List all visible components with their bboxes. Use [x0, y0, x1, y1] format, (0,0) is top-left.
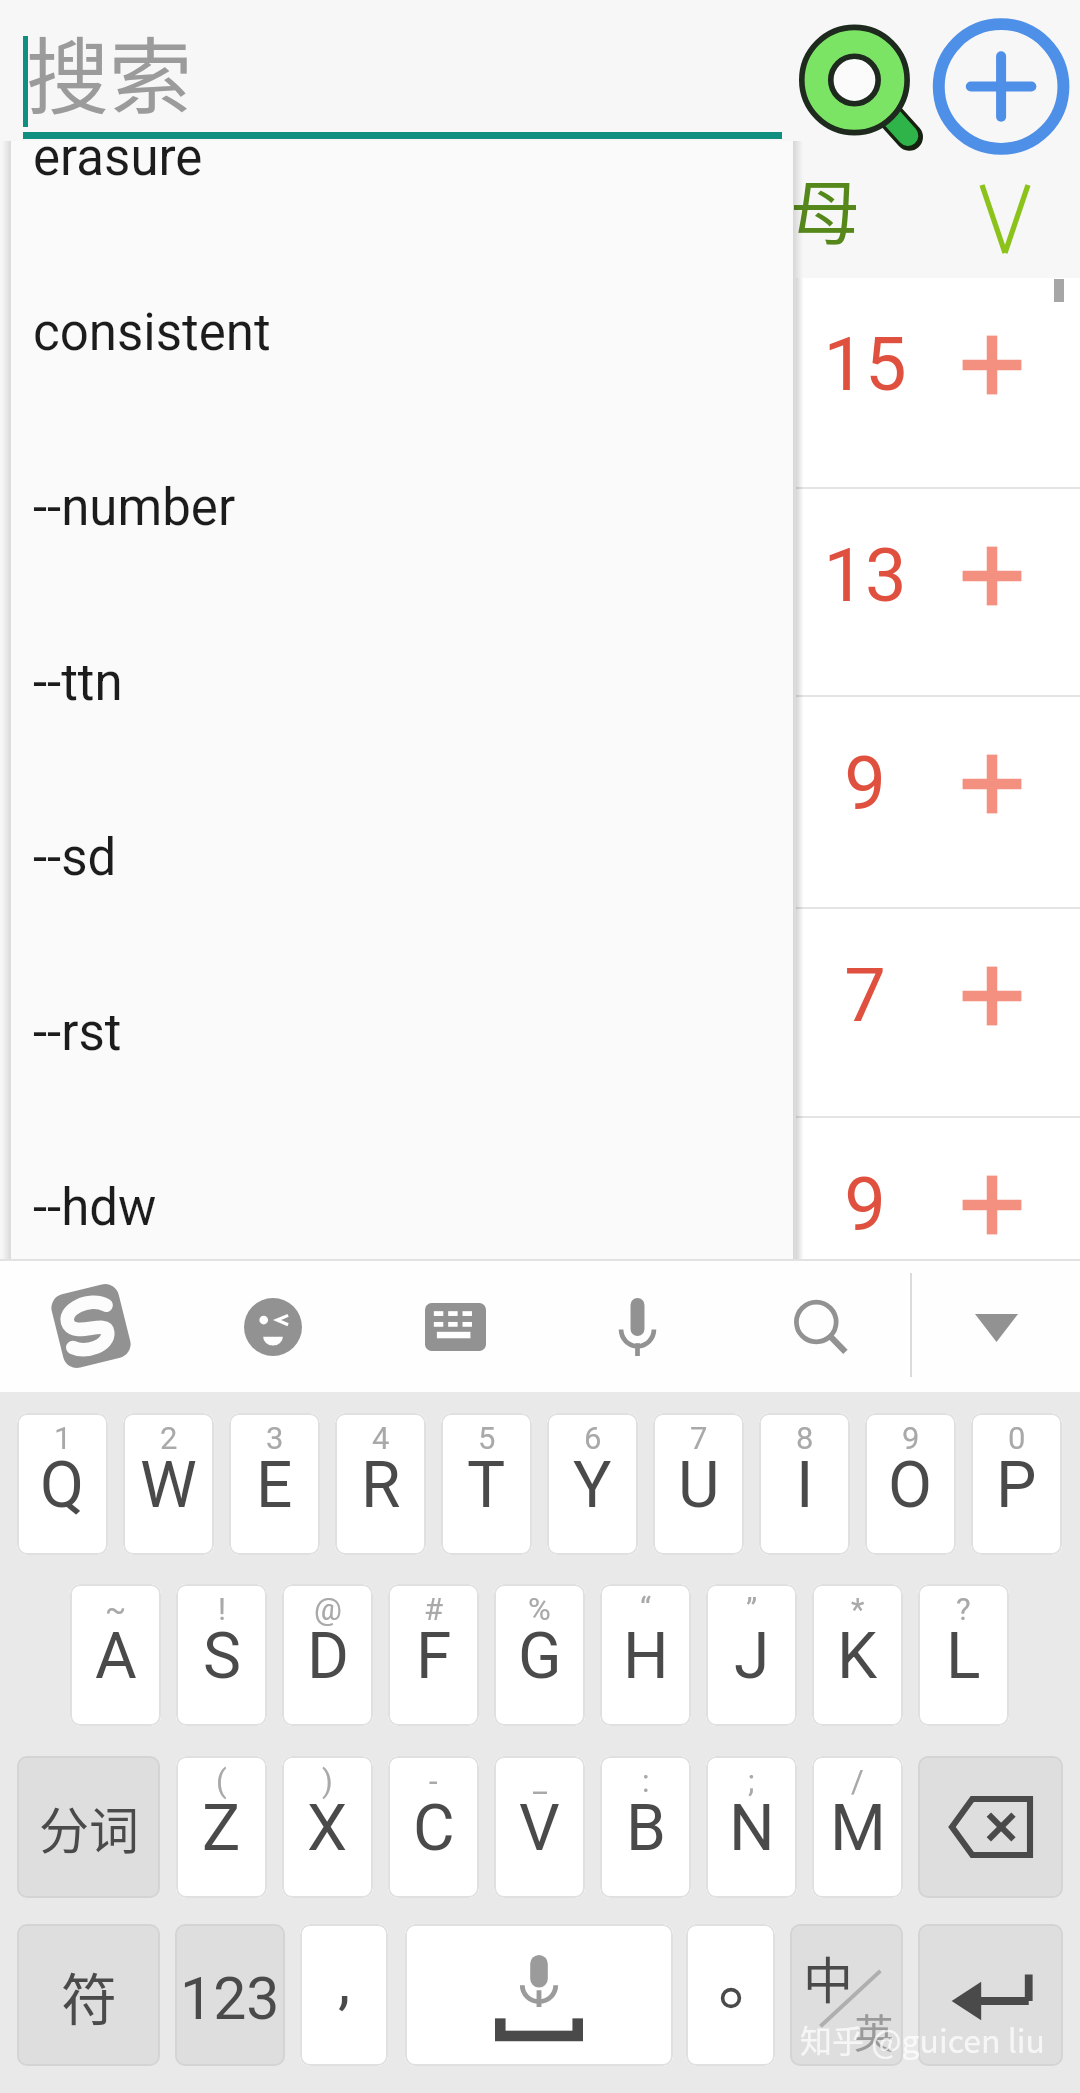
button[interactable]: ; [706, 1756, 797, 1898]
staticText: L [946, 1619, 981, 1694]
button[interactable]: , [300, 1924, 388, 2066]
button[interactable]: --number [11, 491, 793, 666]
staticText: Z [202, 1791, 241, 1866]
button[interactable]: @ [282, 1584, 373, 1726]
button[interactable]: % [494, 1584, 585, 1726]
staticText: Y [573, 1448, 612, 1523]
button[interactable]: 7 [653, 1413, 744, 1555]
button[interactable]: 2 [123, 1413, 214, 1555]
button[interactable]: _ [494, 1756, 585, 1898]
button[interactable]: Keyboard layout [400, 1272, 510, 1382]
staticText: S [203, 1619, 241, 1694]
button[interactable]: Space [405, 1924, 673, 2066]
button[interactable]: “ [600, 1584, 691, 1726]
staticText: E [256, 1448, 293, 1523]
button[interactable]: erasure [11, 141, 793, 316]
staticText: J [734, 1619, 770, 1694]
staticText: --ttn [33, 653, 123, 713]
staticText: --rst [33, 1003, 122, 1063]
staticText: A [95, 1619, 137, 1694]
staticText: erasure [33, 128, 203, 188]
staticText: 中 [803, 1941, 853, 2013]
staticText: 6 [584, 1420, 602, 1456]
staticText: --hdw [33, 1178, 157, 1238]
button[interactable]: * [812, 1584, 903, 1726]
staticText: _ [533, 1763, 547, 1799]
staticText: 123 [180, 1964, 280, 2033]
staticText: 0 [1008, 1420, 1026, 1456]
button[interactable]: 8 [759, 1413, 850, 1555]
staticText: M [830, 1791, 886, 1866]
button[interactable]: 5 [441, 1413, 532, 1555]
staticText: ) [322, 1763, 333, 1799]
button[interactable]: 1 [17, 1413, 108, 1555]
button[interactable]: 4 [335, 1413, 426, 1555]
button[interactable]: --ttn [11, 666, 793, 841]
button[interactable]: # [388, 1584, 479, 1726]
button[interactable]: 7 [796, 909, 1080, 1118]
button[interactable]: 分词 [17, 1756, 160, 1898]
button[interactable]: --sd [11, 841, 793, 1016]
staticText: --sd [33, 828, 117, 888]
button[interactable]: 符 [17, 1924, 160, 2066]
button[interactable]: 3 [229, 1413, 320, 1555]
button[interactable]: 9 [796, 697, 1080, 909]
staticText: 知乎 @guicen liu [800, 2016, 1045, 2062]
staticText: ( [216, 1763, 227, 1799]
staticText: ; [748, 1763, 755, 1799]
button[interactable]: Backspace [918, 1756, 1063, 1898]
staticText: O [888, 1448, 933, 1523]
button[interactable]: Search [768, 1274, 878, 1384]
staticText: 1 [54, 1420, 72, 1456]
button[interactable]: / [812, 1756, 903, 1898]
button[interactable]: 6 [547, 1413, 638, 1555]
staticText: 5 [478, 1420, 496, 1456]
staticText: ? [956, 1591, 971, 1627]
staticText: : [642, 1763, 650, 1799]
staticText: * [851, 1591, 865, 1627]
staticText: 3 [266, 1420, 284, 1456]
button[interactable]: ( [176, 1756, 267, 1898]
button[interactable]: Sogou input [36, 1271, 146, 1381]
staticText: ” [746, 1591, 758, 1627]
staticText: --number [33, 478, 236, 538]
staticText: - [429, 1763, 438, 1799]
staticText: 7 [796, 952, 934, 1039]
staticText: # [424, 1591, 444, 1627]
staticText: 符 [61, 1955, 117, 2036]
button[interactable]: ? [918, 1584, 1009, 1726]
button[interactable]: 0 [971, 1413, 1062, 1555]
button[interactable]: 9 [865, 1413, 956, 1555]
button[interactable]: --rst [11, 1016, 793, 1191]
staticText: B [626, 1791, 666, 1866]
staticText: H [623, 1619, 669, 1694]
button[interactable]: 123 [175, 1924, 285, 2066]
staticText: ~ [105, 1591, 127, 1627]
button[interactable]: Hide keyboard [941, 1273, 1051, 1383]
button[interactable]: 13 [796, 489, 1080, 697]
button[interactable]: ~ [70, 1584, 161, 1726]
button[interactable]: : [600, 1756, 691, 1898]
button[interactable]: Chinese full stop [686, 1924, 775, 2066]
staticText: @ [314, 1591, 342, 1627]
button[interactable]: 15 [796, 278, 1080, 489]
button[interactable]: 9 [796, 1118, 1080, 1327]
button[interactable]: --hdw [11, 1191, 793, 1366]
staticText: 8 [796, 1420, 814, 1456]
button[interactable]: Enter [918, 1924, 1063, 2066]
button[interactable]: - [388, 1756, 479, 1898]
button[interactable]: Voice input [582, 1272, 692, 1382]
staticText: 搜索 [26, 11, 192, 131]
button[interactable]: ” [706, 1584, 797, 1726]
button[interactable]: Search [788, 13, 922, 147]
button[interactable]: consistent [11, 316, 793, 491]
button[interactable]: Chinese English toggle [790, 1924, 903, 2066]
button[interactable]: Search field [14, 6, 789, 140]
staticText: N [729, 1791, 775, 1866]
button[interactable]: ) [282, 1756, 373, 1898]
button[interactable]: Emoji [218, 1272, 328, 1382]
staticText: 15 [796, 321, 934, 408]
button[interactable]: Add word [933, 18, 1070, 155]
button[interactable]: ! [176, 1584, 267, 1726]
staticText: 13 [796, 532, 934, 619]
